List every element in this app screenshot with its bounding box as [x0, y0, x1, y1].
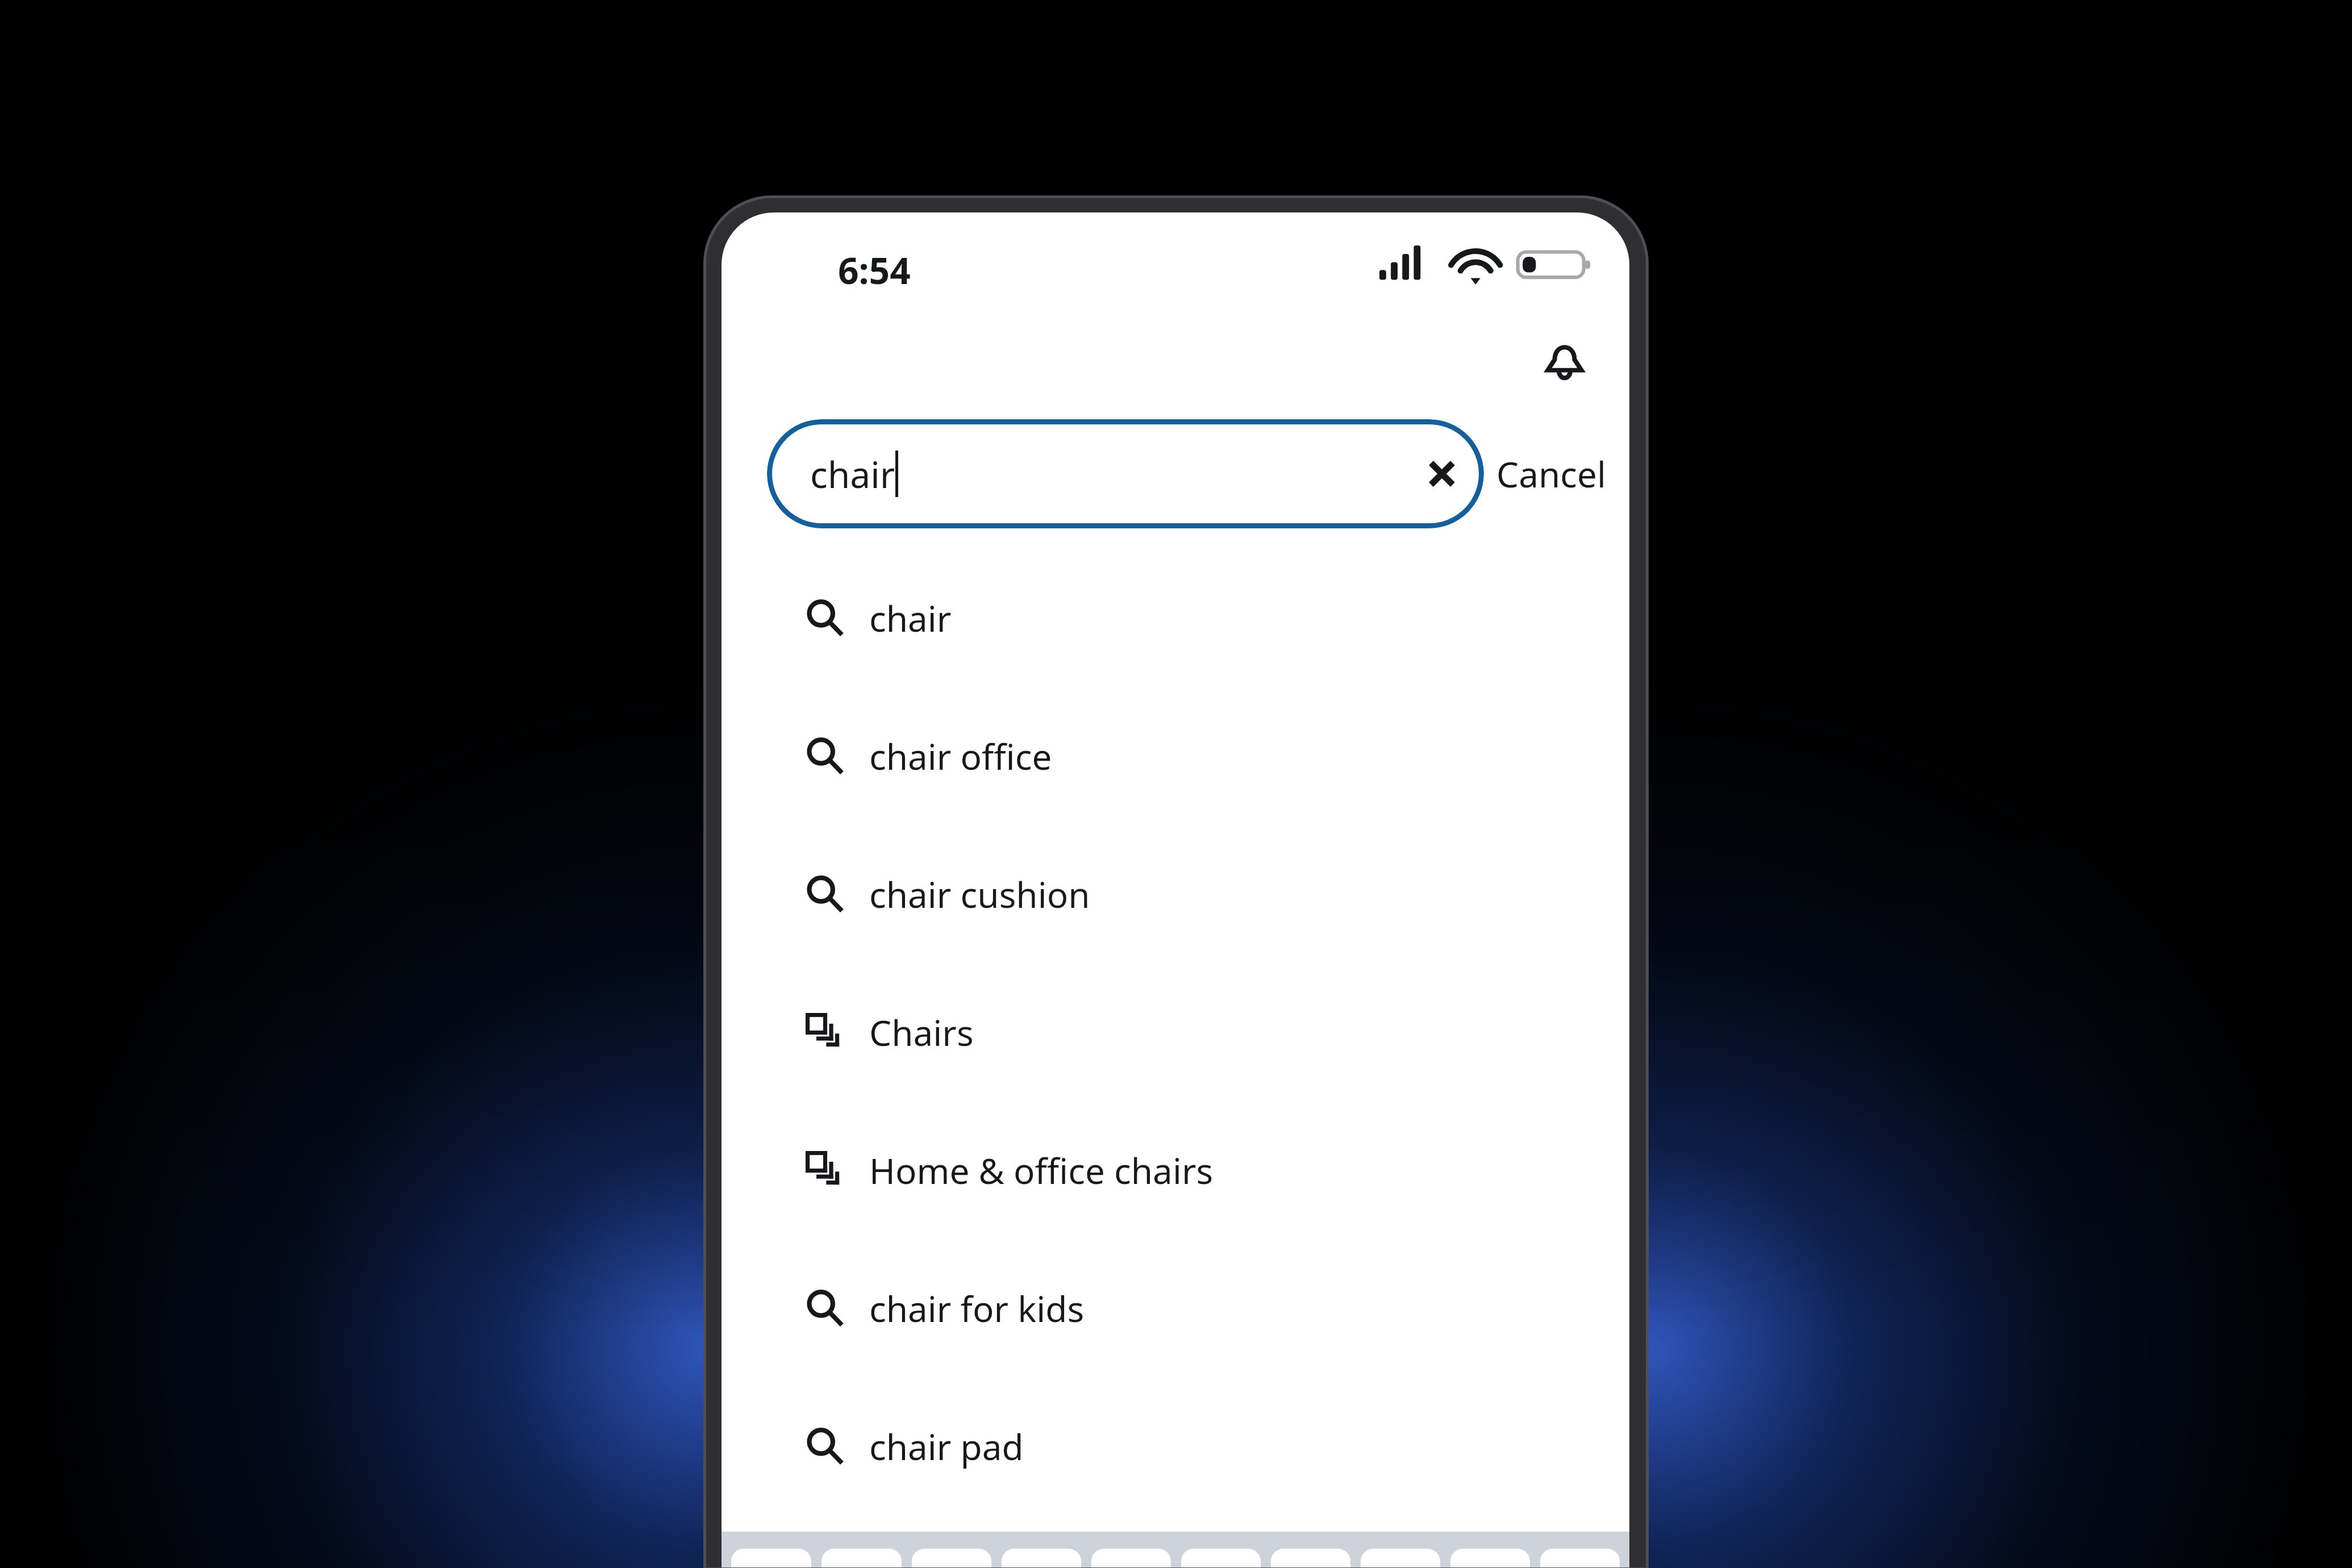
- button[interactable]: Notifications: [1528, 323, 1601, 396]
- staticText: chair cushion: [869, 870, 1090, 918]
- staticText: Chairs: [869, 1008, 974, 1056]
- button[interactable]: [1271, 1549, 1350, 1567]
- button[interactable]: chair office: [722, 687, 1629, 825]
- staticText: chair for kids: [869, 1285, 1085, 1332]
- button[interactable]: [1091, 1549, 1171, 1567]
- button[interactable]: [1540, 1549, 1620, 1567]
- button[interactable]: Cancel: [1493, 419, 1610, 528]
- button[interactable]: chair pad: [722, 1377, 1629, 1515]
- button[interactable]: [1450, 1549, 1530, 1567]
- staticText: chair: [810, 449, 895, 499]
- button[interactable]: [731, 1549, 811, 1567]
- button[interactable]: Chairs: [722, 963, 1629, 1101]
- staticText: chair: [869, 594, 952, 642]
- staticText: chair pad: [869, 1423, 1024, 1470]
- button[interactable]: chair for kids: [722, 1239, 1629, 1377]
- button[interactable]: Clear query: [1404, 436, 1479, 511]
- button[interactable]: [1361, 1549, 1440, 1567]
- staticText: chair office: [869, 732, 1052, 780]
- staticText: Home & office chairs: [869, 1146, 1213, 1194]
- button[interactable]: chair: [767, 419, 1484, 528]
- button[interactable]: Home & office chairs: [722, 1101, 1629, 1239]
- button[interactable]: [1002, 1549, 1081, 1567]
- button[interactable]: [912, 1549, 991, 1567]
- button[interactable]: chair cushion: [722, 825, 1629, 963]
- button[interactable]: [821, 1549, 902, 1567]
- button[interactable]: [1181, 1549, 1261, 1567]
- staticText: Cancel: [1496, 450, 1607, 498]
- button[interactable]: chair: [722, 549, 1629, 687]
- staticText: 6:54: [838, 245, 911, 295]
